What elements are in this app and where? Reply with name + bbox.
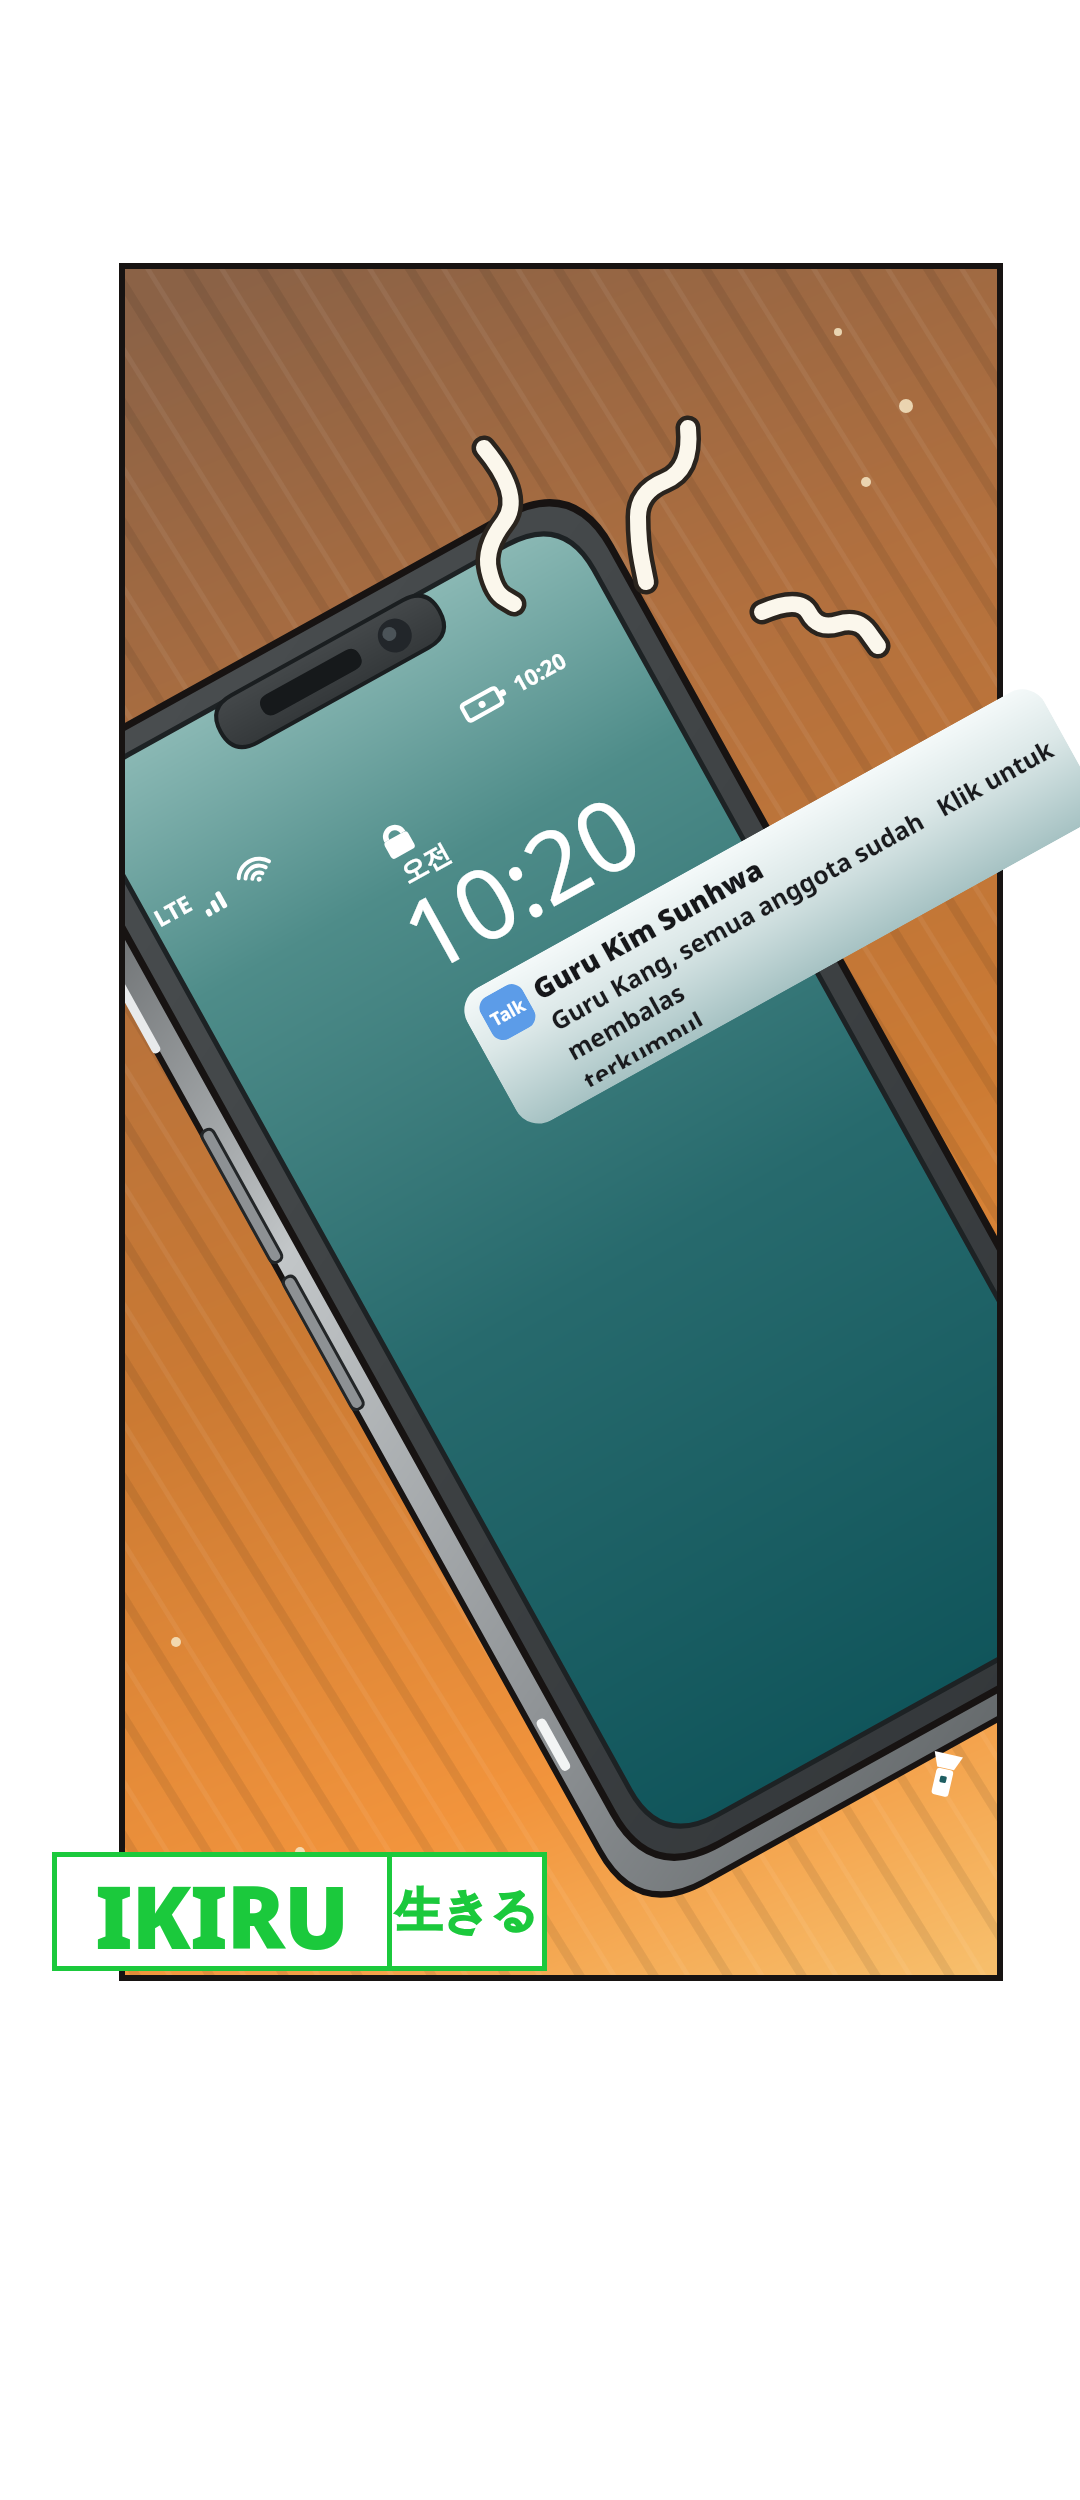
staticText: 10:20 xyxy=(378,762,662,1000)
button[interactable]: Flashlight xyxy=(912,1738,978,1804)
staticText: 生きる xyxy=(395,1882,539,1941)
other: Battery charging xyxy=(462,686,508,718)
staticText: IKIRU xyxy=(95,1857,349,1966)
button[interactable]: Talk xyxy=(455,680,1080,1133)
staticText: 10:20 xyxy=(507,644,571,698)
button[interactable]: IKIRU xyxy=(57,1857,542,1966)
staticText: Guru Kim Sunhwa xyxy=(525,849,770,1008)
staticText: Talk xyxy=(486,992,530,1032)
staticText: LTE xyxy=(148,887,197,933)
other: Locked xyxy=(378,823,420,865)
staticText: Guru Kang, semua anggota sudah Klik untu… xyxy=(544,730,1077,1067)
staticText: terkumpul xyxy=(577,1003,705,1088)
staticText: 오전 xyxy=(395,837,456,891)
